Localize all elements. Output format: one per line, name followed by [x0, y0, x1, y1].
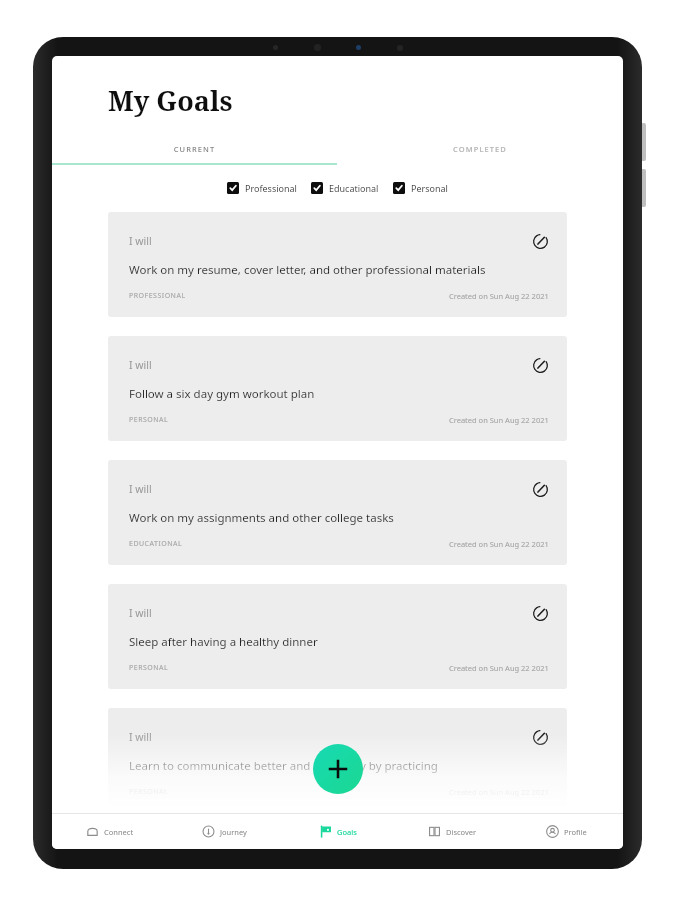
staticText: Discover — [446, 827, 477, 837]
staticText: PERSONAL — [129, 663, 169, 673]
button[interactable]: COMPLETED — [337, 144, 623, 165]
button[interactable]: Goals — [281, 814, 395, 849]
staticText: I will — [129, 234, 152, 248]
button[interactable]: I will — [108, 708, 567, 813]
staticText: EDUCATIONAL — [129, 539, 183, 549]
staticText: Sleep after having a healthy dinner — [129, 634, 318, 650]
button[interactable]: Edit goal — [531, 604, 549, 622]
staticText: Created on Sun Aug 22 2021 — [449, 539, 549, 549]
button[interactable]: Discover — [395, 814, 509, 849]
staticText: Personal — [411, 182, 448, 194]
button[interactable]: Personal — [393, 182, 448, 194]
staticText: Learn to communicate better and efficien… — [129, 758, 438, 774]
button[interactable]: I will — [108, 584, 567, 689]
staticText: PERSONAL — [129, 415, 169, 425]
button[interactable]: Edit goal — [531, 728, 549, 746]
staticText: Work on my resume, cover letter, and oth… — [129, 262, 486, 278]
staticText: Connect — [104, 827, 134, 837]
button[interactable]: CURRENT — [52, 144, 337, 165]
button[interactable]: Journey — [167, 814, 281, 849]
staticText: PERSONAL — [129, 787, 169, 797]
staticText: My Goals — [108, 82, 233, 119]
button[interactable]: Professional — [227, 182, 297, 194]
staticText: Professional — [245, 182, 297, 194]
staticText: Created on Sun Aug 22 2021 — [449, 291, 549, 301]
button[interactable]: Edit goal — [531, 356, 549, 374]
staticText: I will — [129, 606, 152, 620]
staticText: Journey — [220, 827, 247, 837]
staticText: Educational — [329, 182, 379, 194]
button[interactable]: Edit goal — [531, 232, 549, 250]
button[interactable]: I will — [108, 212, 567, 317]
staticText: Profile — [564, 827, 587, 837]
button[interactable]: Edit goal — [531, 480, 549, 498]
staticText: Created on Sun Aug 22 2021 — [449, 663, 549, 673]
staticText: PROFESSIONAL — [129, 291, 186, 301]
staticText: Created on Sun Aug 22 2021 — [449, 415, 549, 425]
button[interactable]: Profile — [509, 814, 623, 849]
button[interactable]: Connect — [52, 814, 167, 849]
staticText: I will — [129, 482, 152, 496]
staticText: I will — [129, 358, 152, 372]
button[interactable]: Educational — [311, 182, 379, 194]
button[interactable]: Add goal — [313, 744, 363, 794]
staticText: I will — [129, 730, 152, 744]
button[interactable]: I will — [108, 336, 567, 441]
staticText: Follow a six day gym workout plan — [129, 386, 315, 402]
staticText: CURRENT — [52, 144, 337, 154]
button[interactable]: I will — [108, 460, 567, 565]
staticText: COMPLETED — [337, 144, 623, 154]
staticText: Work on my assignments and other college… — [129, 510, 394, 526]
staticText: Goals — [337, 827, 357, 837]
